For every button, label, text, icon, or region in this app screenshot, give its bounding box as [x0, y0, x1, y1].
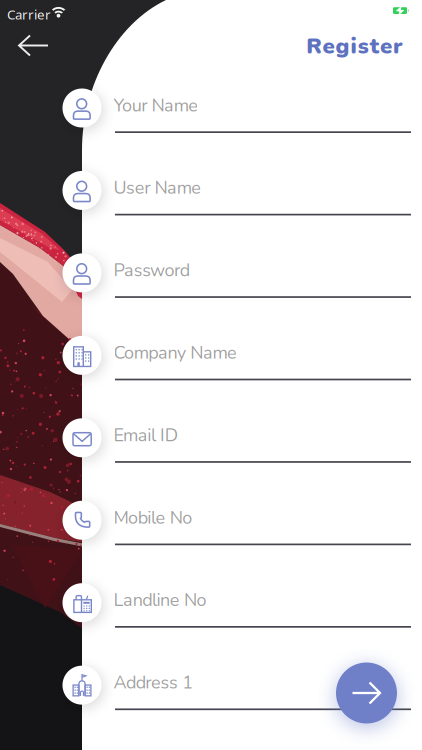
staticText: Email ID — [113, 423, 178, 448]
staticText: Company Name — [113, 341, 237, 365]
staticText: Register — [306, 31, 403, 61]
staticText: Carrier — [7, 5, 51, 23]
staticText: Landline No — [113, 588, 206, 612]
staticText: Your Name — [113, 93, 198, 118]
staticText: Mobile No — [113, 505, 192, 530]
staticText: Password — [113, 258, 190, 283]
staticText: User Name — [113, 176, 201, 200]
staticText: Address 1 — [113, 670, 193, 695]
button[interactable]: Back — [17, 34, 50, 56]
button[interactable]: Next — [336, 662, 397, 723]
